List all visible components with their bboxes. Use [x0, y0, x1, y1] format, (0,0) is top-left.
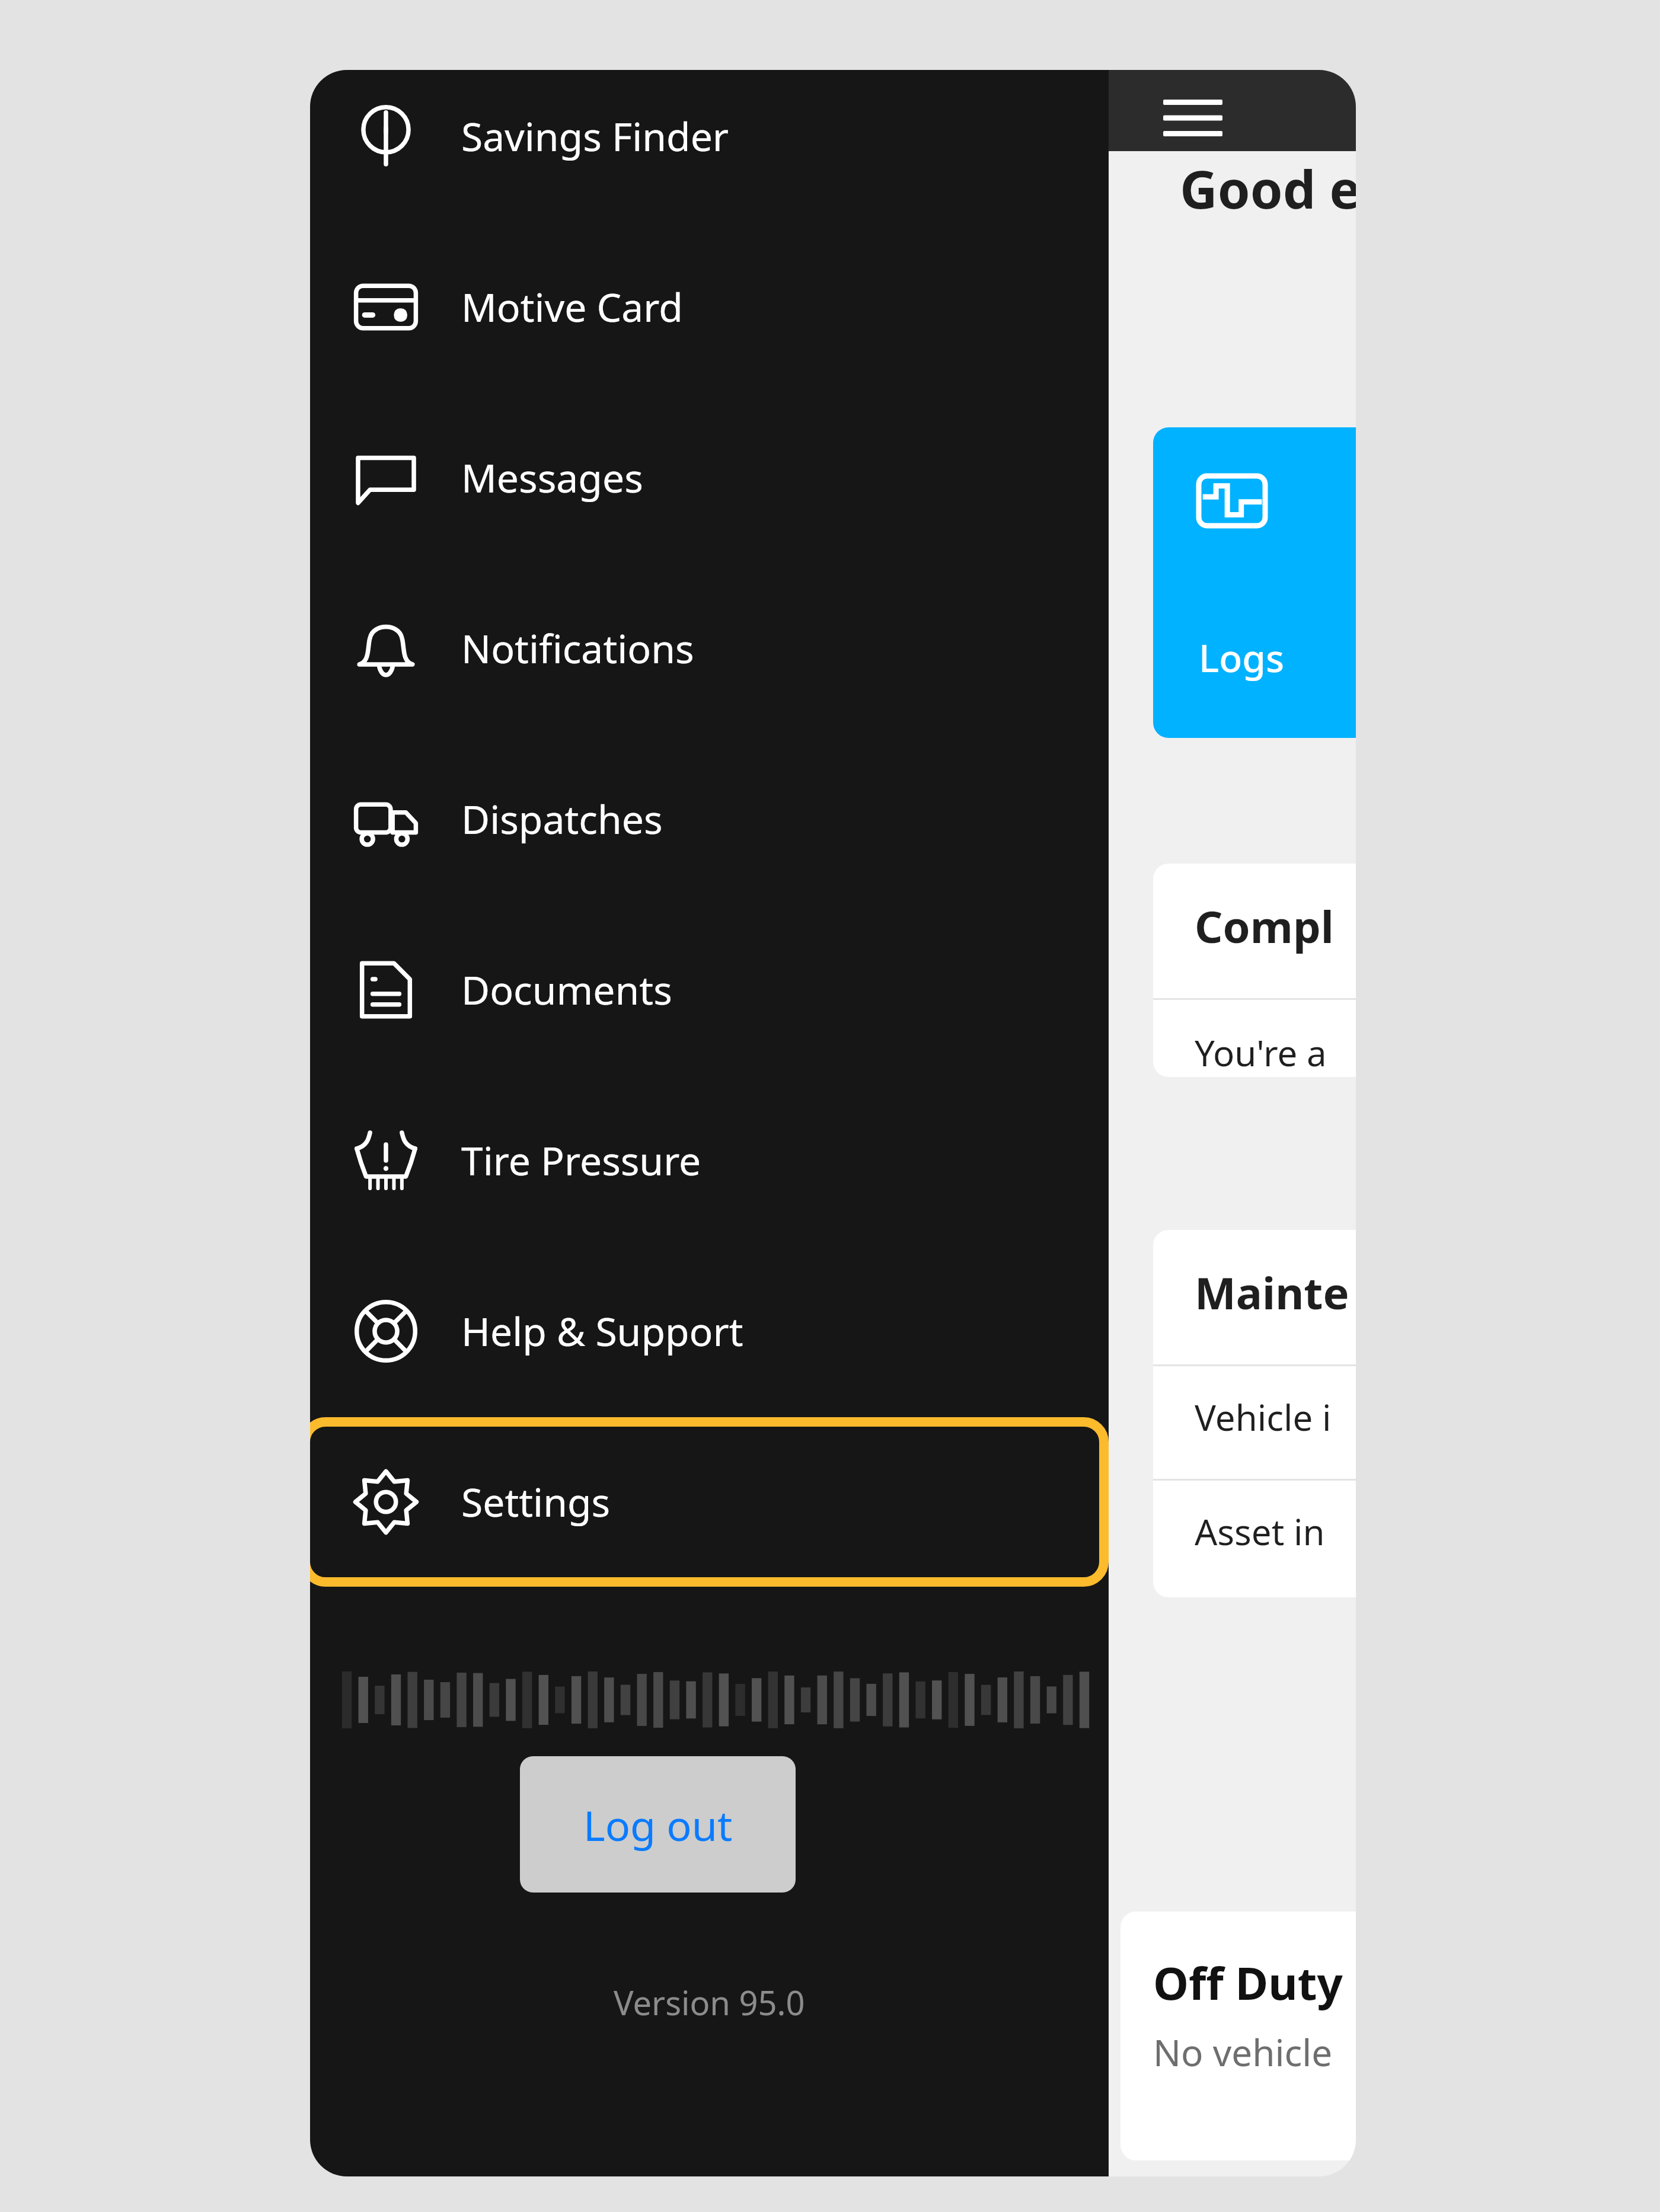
staticText: Logs: [1199, 632, 1285, 683]
staticText: Off Duty: [1153, 1952, 1343, 2013]
staticText: Tire Pressure: [461, 1133, 701, 1187]
staticText: Compl: [1195, 896, 1334, 956]
button[interactable]: Help & Support: [310, 1246, 1109, 1417]
button[interactable]: Documents: [310, 904, 1109, 1075]
staticText: No vehicle: [1153, 2027, 1333, 2077]
staticText: Help & Support: [461, 1304, 743, 1357]
staticText: Savings Finder: [461, 109, 729, 162]
button[interactable]: Open navigation menu: [1109, 70, 1356, 151]
staticText: Settings: [461, 1475, 611, 1528]
staticText: Log out: [583, 1797, 733, 1853]
button[interactable]: Messages: [310, 392, 1109, 563]
button[interactable]: Off Duty: [1120, 1911, 1356, 2160]
staticText: Notifications: [461, 621, 694, 675]
staticText: Messages: [461, 450, 643, 504]
button[interactable]: Dispatches: [310, 734, 1109, 904]
staticText: Asset in: [1195, 1507, 1325, 1556]
staticText: Dispatches: [461, 792, 663, 845]
button[interactable]: Compl: [1153, 864, 1356, 1077]
button[interactable]: Savings Finder: [310, 70, 1109, 222]
button[interactable]: Motive Card: [310, 222, 1109, 392]
staticText: Version 95.0: [614, 1980, 805, 2025]
button[interactable]: Logs: [1153, 427, 1356, 738]
staticText: Motive Card: [461, 280, 683, 333]
staticText: Documents: [461, 963, 672, 1016]
button[interactable]: Mainte: [1153, 1230, 1356, 1597]
button[interactable]: Tire Pressure: [310, 1075, 1109, 1246]
staticText: Vehicle i: [1195, 1393, 1332, 1441]
staticText: Good e: [1180, 153, 1356, 224]
staticText: Mainte: [1195, 1262, 1349, 1322]
staticText: You're a: [1195, 1028, 1327, 1077]
button[interactable]: Settings: [310, 1417, 1109, 1587]
button[interactable]: Log out: [520, 1756, 796, 1893]
button[interactable]: Notifications: [310, 563, 1109, 734]
